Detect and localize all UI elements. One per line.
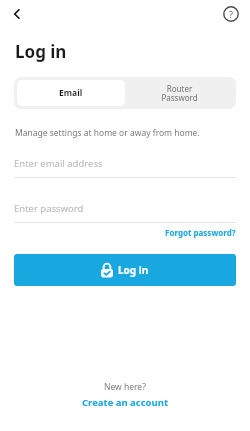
staticText: ? (229, 8, 233, 20)
button[interactable]: Help (220, 3, 242, 25)
staticText: New here? (104, 381, 146, 393)
staticText: Log in (118, 263, 149, 277)
staticText: Enter email address (14, 157, 103, 170)
button[interactable]: Enter password (14, 200, 236, 223)
button[interactable]: Create an account (82, 396, 169, 409)
staticText: Manage settings at home or away from hom… (15, 127, 200, 139)
button[interactable]: Email (17, 80, 125, 106)
button[interactable]: Enter email address (14, 155, 236, 178)
staticText: Forgot password? (165, 227, 236, 238)
staticText: Email (59, 87, 83, 99)
button[interactable]: Router Password (125, 80, 233, 106)
staticText: Create an account (82, 396, 169, 409)
staticText: Router Password (161, 83, 198, 104)
staticText: Log in (15, 40, 67, 63)
button[interactable]: Forgot password? (165, 227, 236, 238)
staticText: Enter password (14, 202, 84, 215)
button[interactable]: Back (6, 3, 28, 25)
button[interactable]: Log in (14, 254, 236, 286)
